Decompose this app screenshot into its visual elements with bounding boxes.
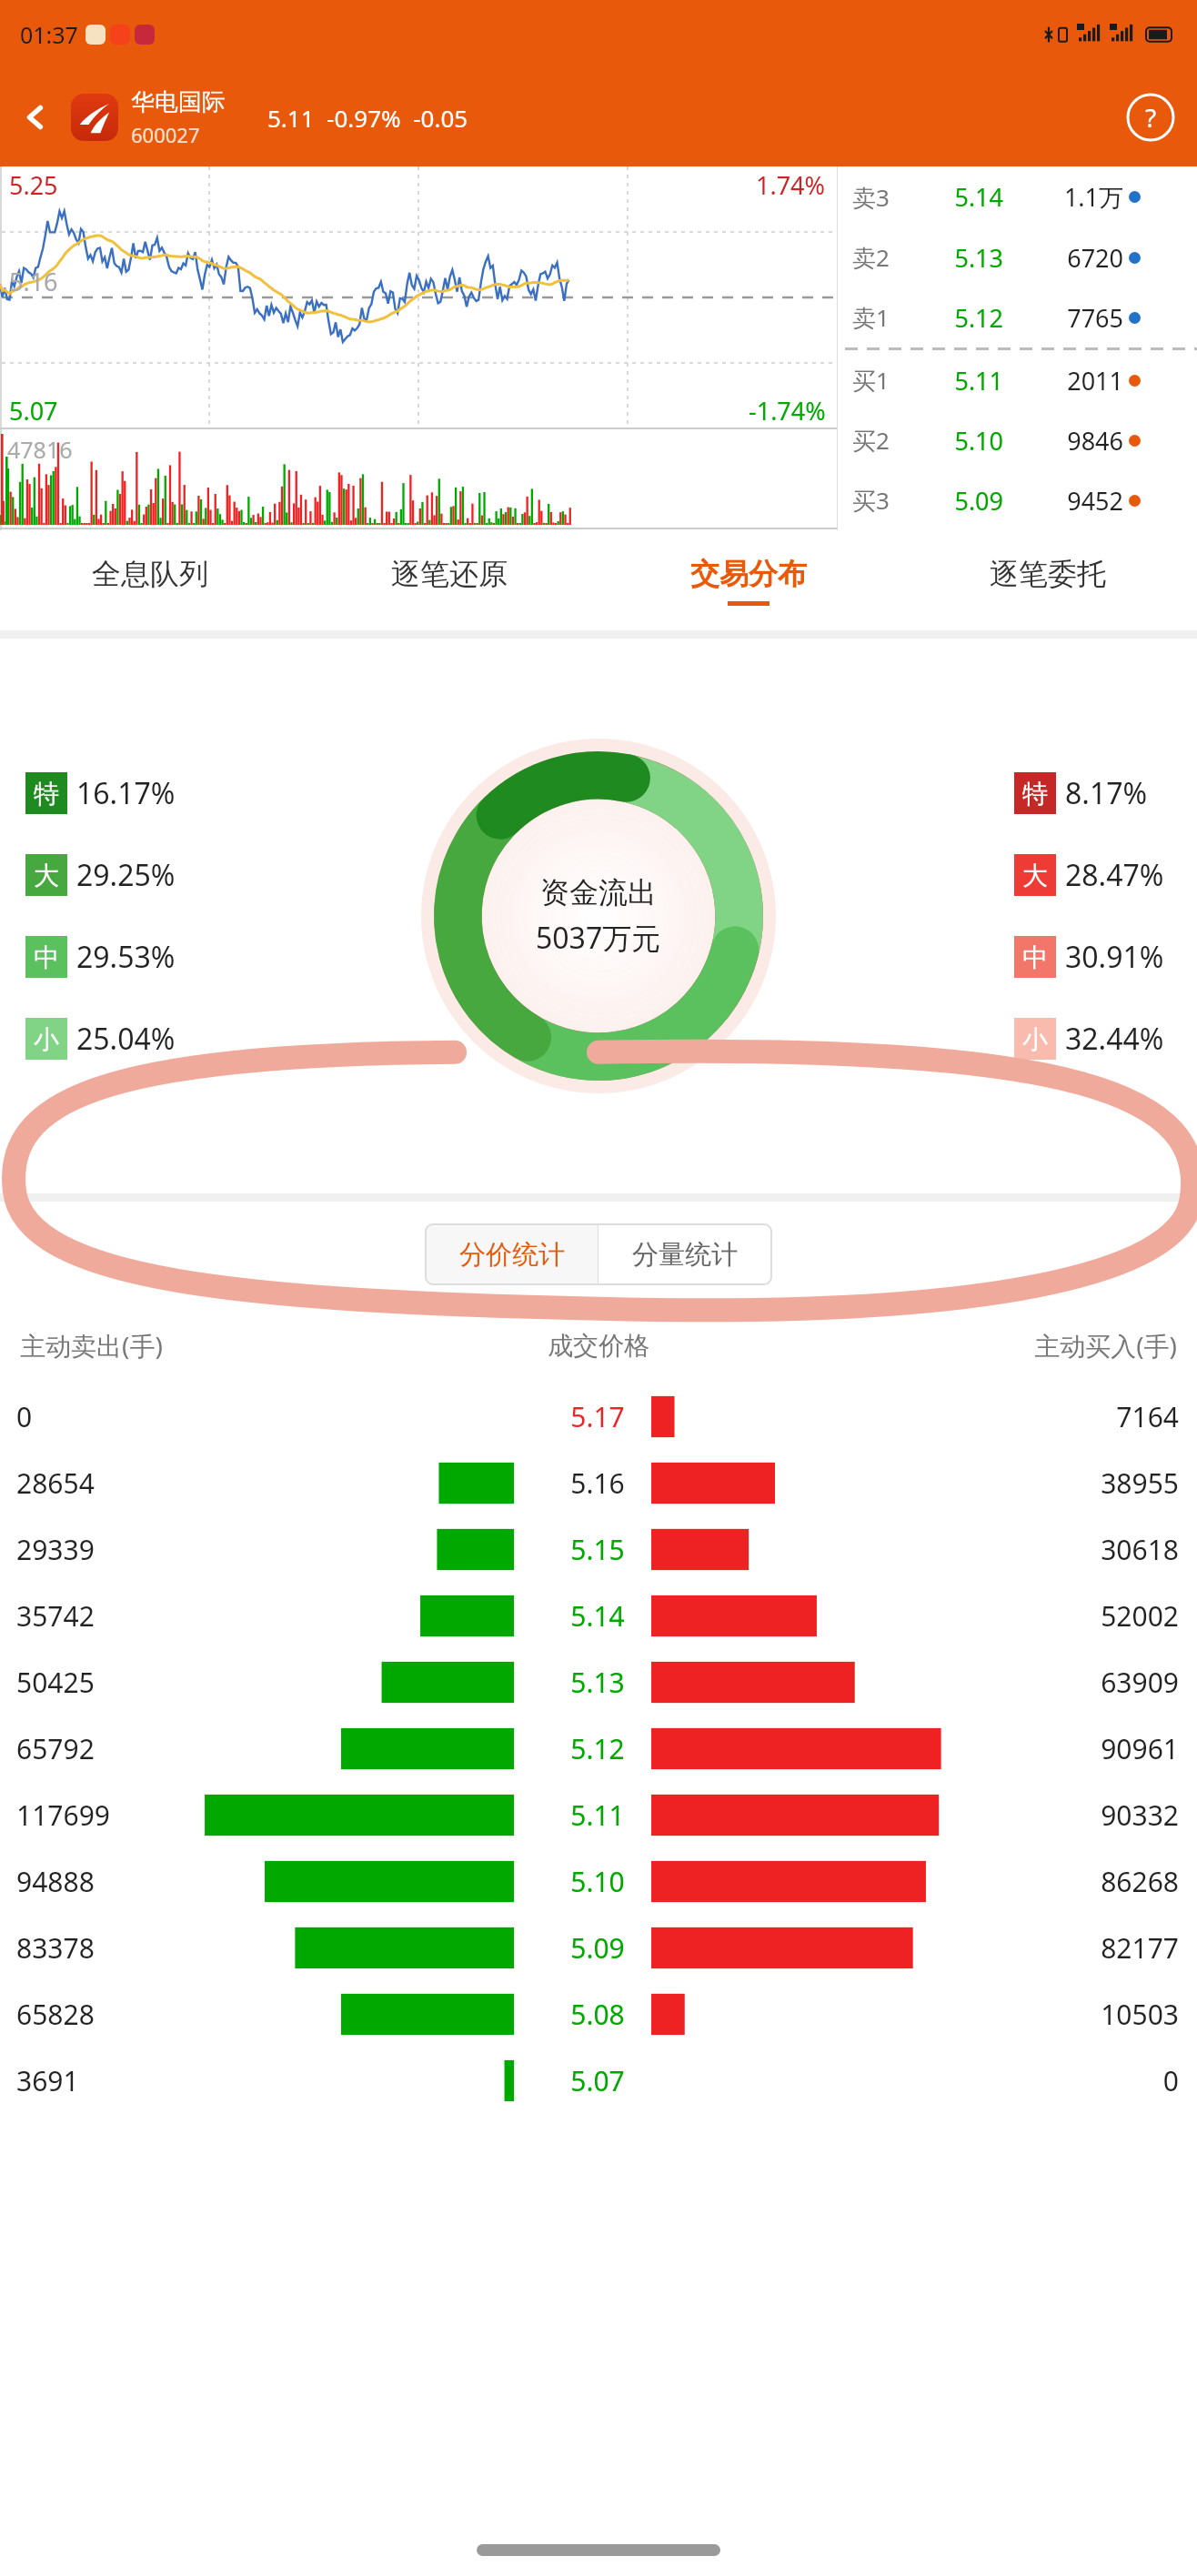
- button[interactable]: 35742: [0, 1583, 1197, 1649]
- staticText: 16.17%: [76, 773, 176, 813]
- staticText: 小: [34, 1023, 59, 1055]
- staticText: 5.13: [529, 1664, 666, 1701]
- staticText: 特: [34, 778, 59, 810]
- staticText: 9452: [1016, 484, 1123, 518]
- staticText: 交易分布: [690, 556, 807, 592]
- staticText: 38955: [970, 1464, 1179, 1502]
- staticText: 分价统计: [459, 1238, 565, 1272]
- staticText: 逐笔还原: [391, 556, 508, 592]
- staticText: 28.47%: [1065, 855, 1164, 895]
- staticText: 01:37: [20, 19, 78, 50]
- staticText: 5.16: [9, 265, 58, 298]
- button[interactable]: 83378: [0, 1915, 1197, 1981]
- staticText: 50425: [16, 1664, 226, 1701]
- staticText: 5.11: [529, 1796, 666, 1834]
- button[interactable]: 65828: [0, 1981, 1197, 2048]
- button[interactable]: Help: [1126, 93, 1175, 142]
- staticText: 1.74%: [756, 168, 826, 202]
- staticText: 30.91%: [1065, 937, 1164, 977]
- staticText: 0: [16, 1398, 226, 1435]
- staticText: 2011: [1016, 364, 1123, 397]
- staticText: 5.15: [529, 1531, 666, 1568]
- staticText: 卖3: [852, 181, 912, 214]
- staticText: 5.17: [529, 1398, 666, 1435]
- staticText: 大: [34, 860, 59, 891]
- staticText: 5.07: [9, 394, 58, 428]
- staticText: 特: [1022, 778, 1048, 810]
- staticText: 5.09: [912, 484, 1003, 518]
- button[interactable]: 交易分布: [598, 530, 898, 630]
- staticText: -1.74%: [749, 394, 826, 428]
- button[interactable]: 3691: [0, 2048, 1197, 2114]
- button[interactable]: 50425: [0, 1649, 1197, 1716]
- button[interactable]: 逐笔还原: [299, 530, 598, 630]
- button[interactable]: 买2: [838, 410, 1197, 470]
- staticText: 5.10: [529, 1863, 666, 1900]
- staticText: 华电国际: [131, 87, 226, 117]
- button[interactable]: 28654: [0, 1450, 1197, 1516]
- button[interactable]: 逐笔委托: [898, 530, 1197, 630]
- staticText: 8.17%: [1065, 773, 1148, 813]
- staticText: 5.16: [529, 1464, 666, 1502]
- button[interactable]: 0: [0, 1384, 1197, 1450]
- button[interactable]: 卖1: [838, 287, 1197, 347]
- staticText: 82177: [970, 1929, 1179, 1967]
- staticText: 卖1: [852, 301, 912, 334]
- staticText: 大: [1022, 860, 1048, 891]
- staticText: 5.12: [529, 1730, 666, 1767]
- staticText: 65828: [16, 1996, 226, 2033]
- staticText: 全息队列: [92, 556, 208, 592]
- staticText: 5.14: [912, 180, 1003, 214]
- staticText: 25.04%: [76, 1019, 176, 1059]
- staticText: 117699: [16, 1796, 226, 1834]
- button[interactable]: 29339: [0, 1516, 1197, 1583]
- staticText: 5.12: [912, 301, 1003, 335]
- staticText: 90961: [970, 1730, 1179, 1767]
- staticText: ?: [1145, 100, 1157, 135]
- staticText: 32.44%: [1065, 1019, 1164, 1059]
- staticText: 9846: [1016, 424, 1123, 458]
- button[interactable]: 117699: [0, 1782, 1197, 1848]
- button[interactable]: Back: [0, 68, 71, 166]
- staticText: 28654: [16, 1464, 226, 1502]
- staticText: 7164: [970, 1398, 1179, 1435]
- button[interactable]: 分价统计: [426, 1224, 598, 1284]
- staticText: 3691: [16, 2062, 226, 2099]
- button[interactable]: 65792: [0, 1716, 1197, 1782]
- staticText: 5.14: [529, 1597, 666, 1635]
- staticText: 86268: [970, 1863, 1179, 1900]
- button[interactable]: 94888: [0, 1848, 1197, 1915]
- staticText: 29.25%: [76, 855, 176, 895]
- staticText: 52002: [970, 1597, 1179, 1635]
- staticText: 5.11: [912, 364, 1003, 397]
- staticText: 94888: [16, 1863, 226, 1900]
- button[interactable]: 卖3: [838, 166, 1197, 227]
- staticText: 5.08: [529, 1996, 666, 2033]
- staticText: 分量统计: [632, 1238, 738, 1272]
- staticText: 6720: [1016, 241, 1123, 275]
- staticText: 35742: [16, 1597, 226, 1635]
- staticText: 600027: [131, 121, 200, 148]
- staticText: 90332: [970, 1796, 1179, 1834]
- staticText: 47816: [7, 434, 73, 465]
- staticText: 买2: [852, 424, 912, 457]
- staticText: 主动买入(手): [959, 1328, 1177, 1363]
- staticText: 29339: [16, 1531, 226, 1568]
- staticText: 29.53%: [76, 937, 176, 977]
- staticText: 资金流出: [540, 874, 657, 911]
- staticText: 5037万元: [536, 918, 661, 958]
- button[interactable]: 买3: [838, 470, 1197, 530]
- staticText: 成交价格: [508, 1330, 689, 1362]
- staticText: 7765: [1016, 301, 1123, 335]
- staticText: 65792: [16, 1730, 226, 1767]
- staticText: 5.07: [529, 2062, 666, 2099]
- button[interactable]: 卖2: [838, 227, 1197, 287]
- staticText: 0: [970, 2062, 1179, 2099]
- button[interactable]: 买1: [838, 350, 1197, 410]
- staticText: 5.11 -0.97% -0.05: [267, 102, 468, 134]
- button[interactable]: 分量统计: [598, 1224, 771, 1284]
- staticText: 买3: [852, 484, 912, 517]
- staticText: 30618: [970, 1531, 1179, 1568]
- staticText: 5.13: [912, 241, 1003, 275]
- button[interactable]: 全息队列: [0, 530, 299, 630]
